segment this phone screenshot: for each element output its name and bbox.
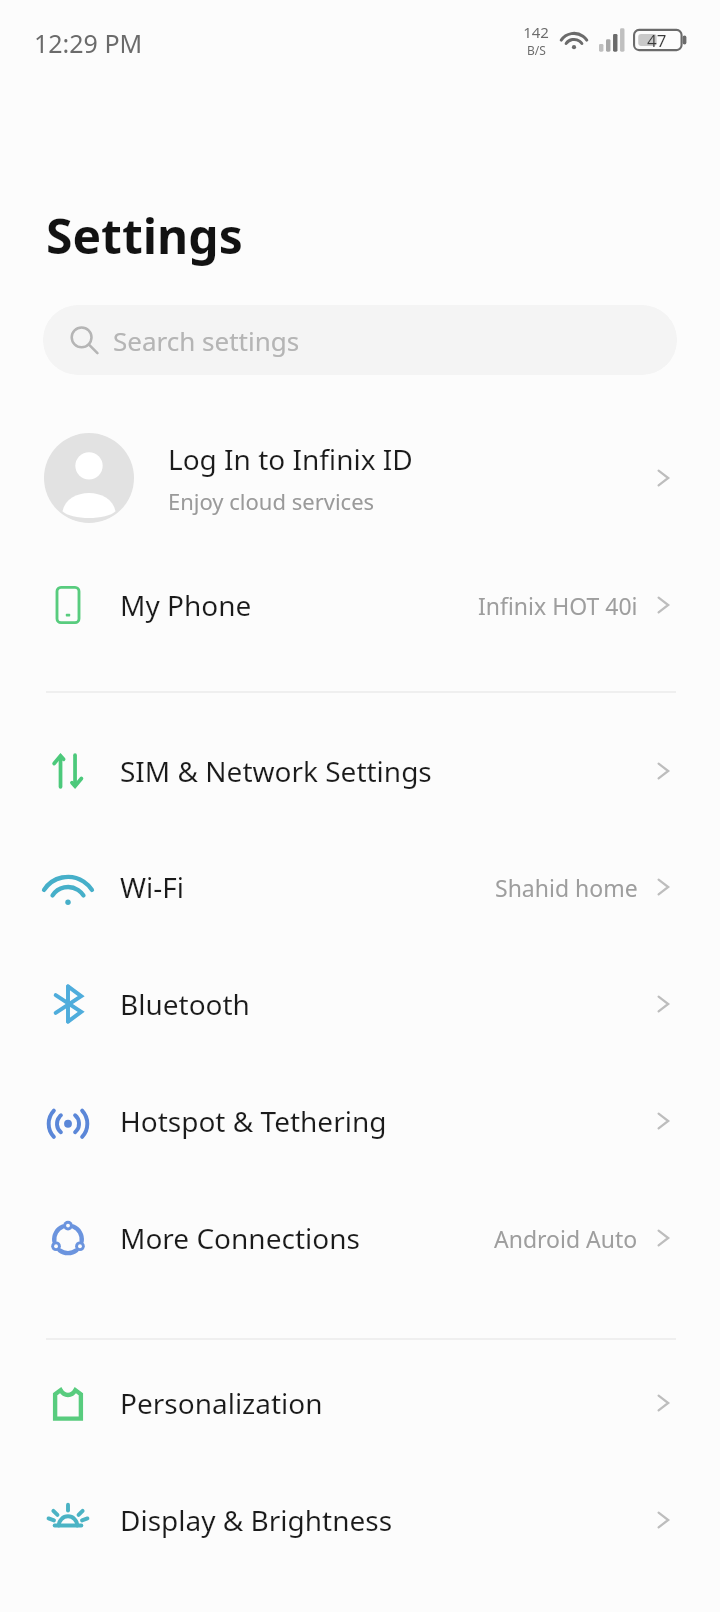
button[interactable]: SIM & Network Settings — [0, 729, 720, 813]
staticText: Hotspot & Tethering — [120, 1102, 387, 1140]
staticText: Log In to Infinix ID — [168, 440, 413, 478]
staticText: Personalization — [120, 1384, 323, 1422]
staticText: Bluetooth — [120, 985, 250, 1023]
staticText: 142 — [523, 22, 549, 42]
button[interactable]: Search settings — [43, 305, 677, 375]
button[interactable]: Display & Brightness — [0, 1478, 720, 1562]
button[interactable]: Bluetooth — [0, 962, 720, 1046]
staticText: My Phone — [120, 586, 252, 624]
staticText: Enjoy cloud services — [168, 486, 375, 516]
staticText: 12:29 PM — [34, 26, 143, 60]
staticText: More Connections — [120, 1219, 360, 1257]
staticText: Wi-Fi — [120, 868, 185, 906]
staticText: Display & Brightness — [120, 1501, 393, 1539]
button[interactable]: Hotspot & Tethering — [0, 1079, 720, 1163]
button[interactable]: My Phone — [0, 563, 720, 647]
button[interactable]: Wi-Fi — [0, 845, 720, 929]
staticText: Settings — [46, 203, 243, 268]
staticText: SIM & Network Settings — [120, 752, 432, 790]
button[interactable]: More Connections — [0, 1196, 720, 1280]
staticText: Infinix HOT 40i — [478, 590, 638, 621]
staticText: Android Auto — [494, 1223, 638, 1254]
staticText: Search settings — [113, 323, 300, 358]
staticText: Shahid home — [495, 872, 638, 903]
staticText: B/S — [527, 42, 546, 58]
button[interactable]: Personalization — [0, 1361, 720, 1445]
button[interactable]: Log In to Infinix ID — [0, 423, 720, 533]
staticText: 47 — [647, 29, 667, 52]
